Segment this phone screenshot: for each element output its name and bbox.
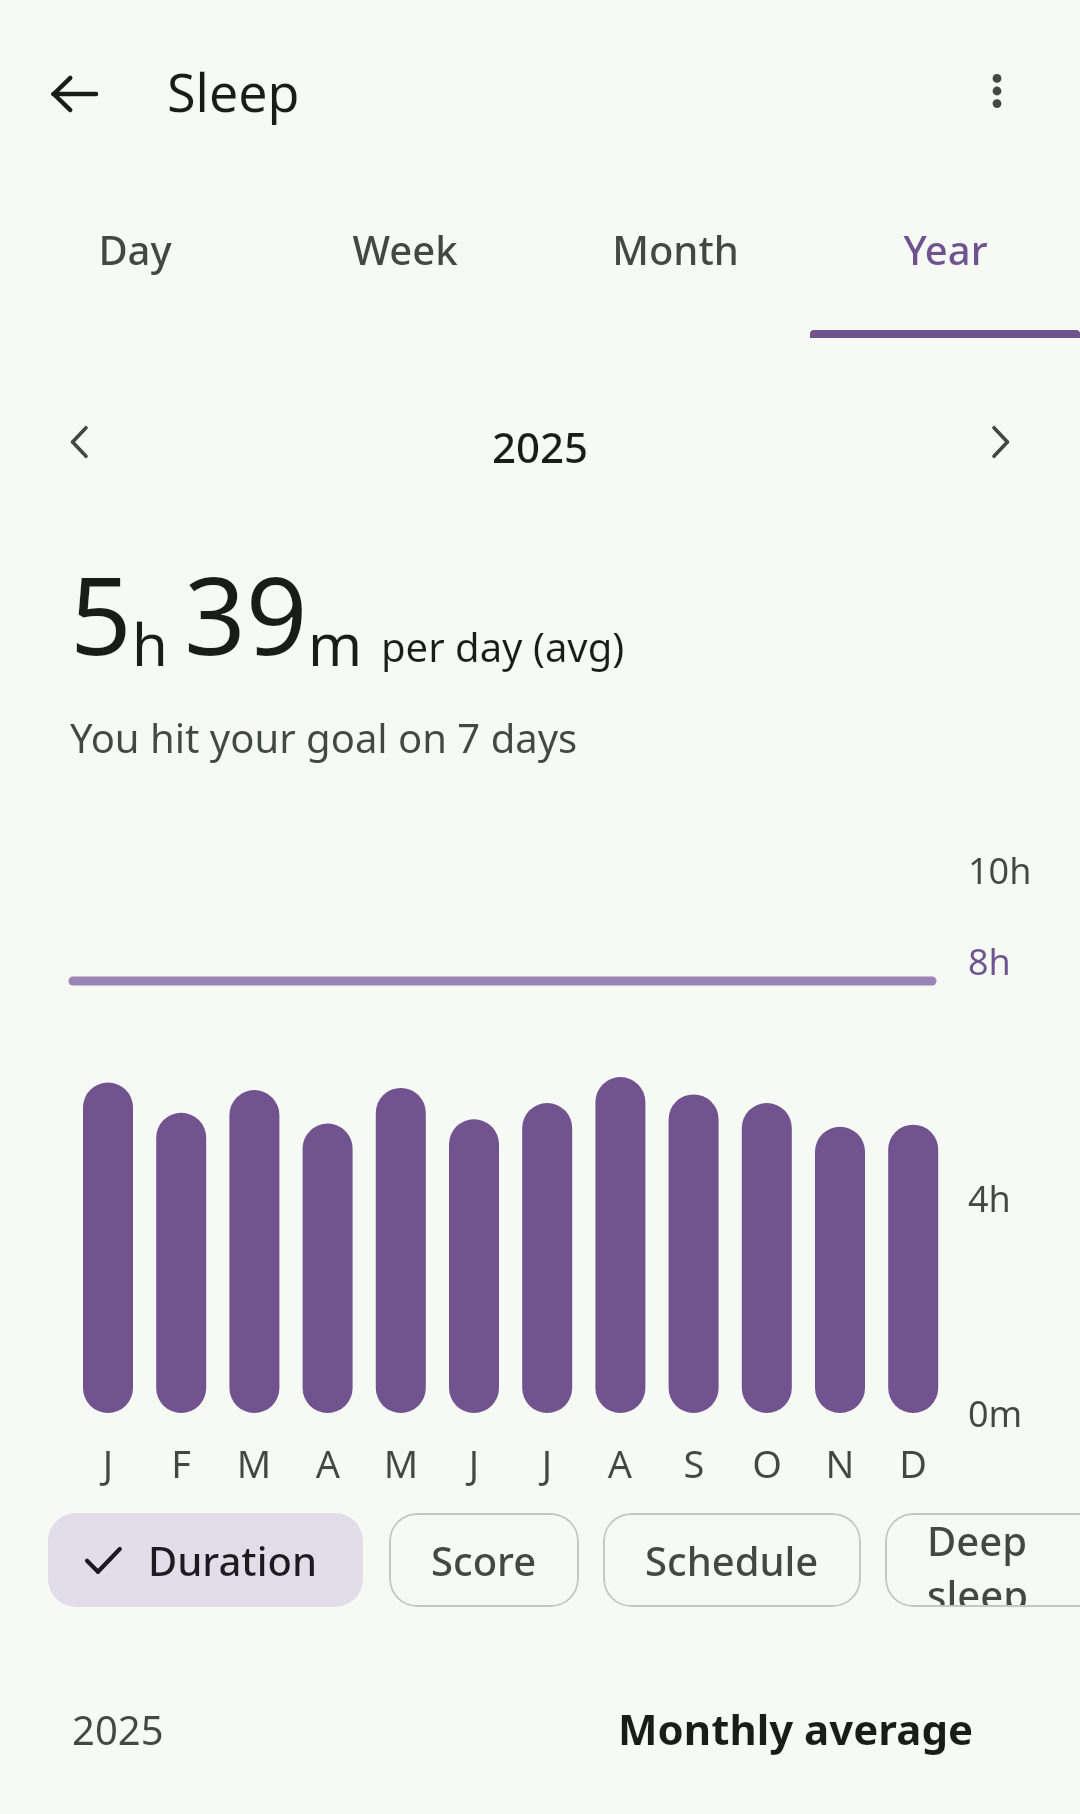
- button[interactable]: Week: [270, 190, 540, 340]
- staticText: D: [888, 1437, 938, 1489]
- staticText: Week: [352, 222, 458, 276]
- staticText: A: [303, 1437, 353, 1489]
- staticText: M: [229, 1437, 279, 1489]
- staticText: 5: [70, 540, 132, 687]
- button[interactable]: Previous year: [44, 405, 118, 479]
- staticText: Score: [431, 1533, 537, 1587]
- staticText: Monthly average: [618, 1700, 974, 1757]
- button[interactable]: Year: [810, 190, 1080, 340]
- staticText: Year: [903, 222, 988, 276]
- button[interactable]: Score: [389, 1513, 579, 1607]
- staticText: Sleep: [167, 56, 300, 127]
- staticText: You hit your goal on 7 days: [70, 710, 578, 764]
- staticText: Day: [98, 222, 172, 276]
- button[interactable]: Next year: [962, 405, 1036, 479]
- staticText: h: [132, 604, 168, 683]
- staticText: 8h: [968, 937, 1011, 986]
- staticText: Month: [612, 222, 739, 276]
- button[interactable]: Month: [540, 190, 810, 340]
- staticText: 2025: [0, 418, 1080, 475]
- staticText: Duration: [148, 1533, 317, 1587]
- staticText: 0m: [968, 1389, 1023, 1438]
- staticText: J: [83, 1437, 133, 1489]
- staticText: J: [522, 1437, 572, 1489]
- button[interactable]: Deep sleep: [885, 1513, 1080, 1607]
- button[interactable]: Back: [36, 56, 112, 132]
- staticText: 10h: [968, 846, 1032, 895]
- staticText: A: [595, 1437, 645, 1489]
- staticText: Schedule: [645, 1533, 819, 1587]
- staticText: O: [742, 1437, 792, 1489]
- staticText: m: [308, 604, 363, 683]
- staticText: N: [815, 1437, 865, 1489]
- staticText: 39: [184, 540, 308, 687]
- staticText: M: [376, 1437, 426, 1489]
- staticText: J: [449, 1437, 499, 1489]
- staticText: 2025: [72, 1702, 164, 1756]
- staticText: S: [669, 1437, 719, 1489]
- staticText: 4h: [968, 1174, 1011, 1223]
- button[interactable]: Day: [0, 190, 270, 340]
- button[interactable]: More options: [958, 52, 1036, 130]
- staticText: F: [156, 1437, 206, 1489]
- button[interactable]: Duration: [48, 1513, 363, 1607]
- staticText: per day (avg): [381, 619, 625, 673]
- button[interactable]: Schedule: [603, 1513, 861, 1607]
- staticText: Deep sleep: [927, 1513, 1080, 1607]
